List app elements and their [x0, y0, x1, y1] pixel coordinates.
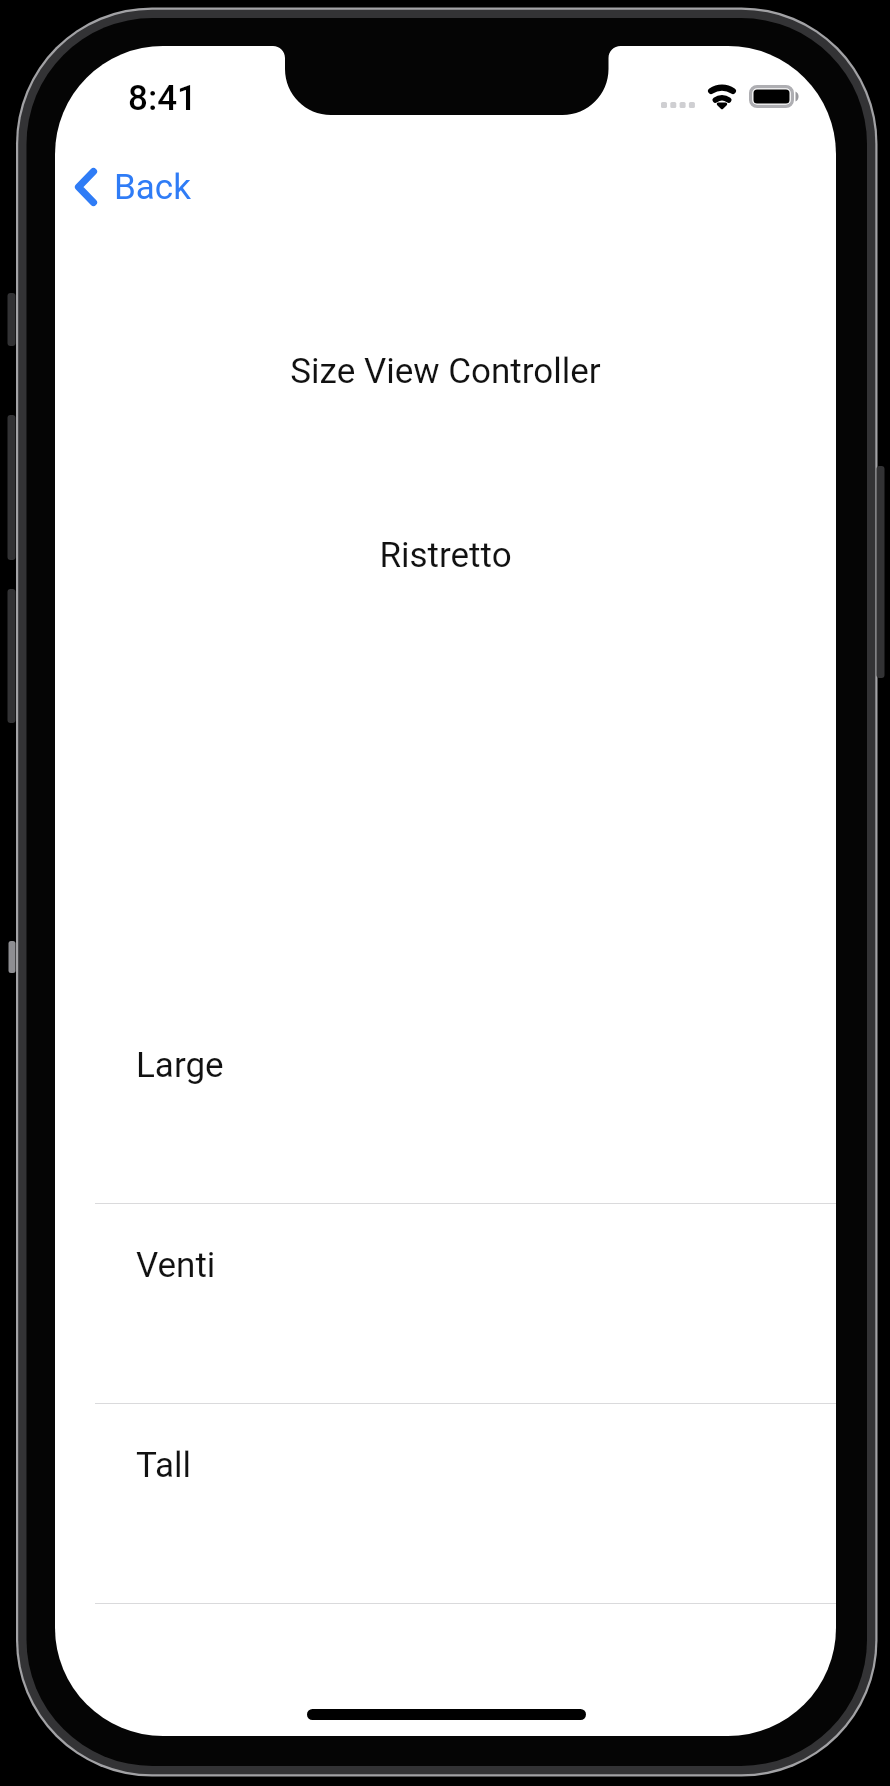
staticText: Large — [136, 1045, 224, 1086]
button[interactable]: Tall — [55, 1404, 836, 1604]
staticText: Size View Controller — [55, 351, 836, 392]
staticText: Ristretto — [55, 535, 836, 576]
button[interactable]: Back — [60, 149, 209, 225]
staticText: Venti — [136, 1245, 216, 1286]
button[interactable]: Large — [55, 1004, 836, 1204]
staticText: Tall — [136, 1445, 192, 1486]
staticText: Back — [114, 167, 191, 208]
staticText: 8:41 — [128, 78, 197, 119]
button[interactable]: Venti — [55, 1204, 836, 1404]
